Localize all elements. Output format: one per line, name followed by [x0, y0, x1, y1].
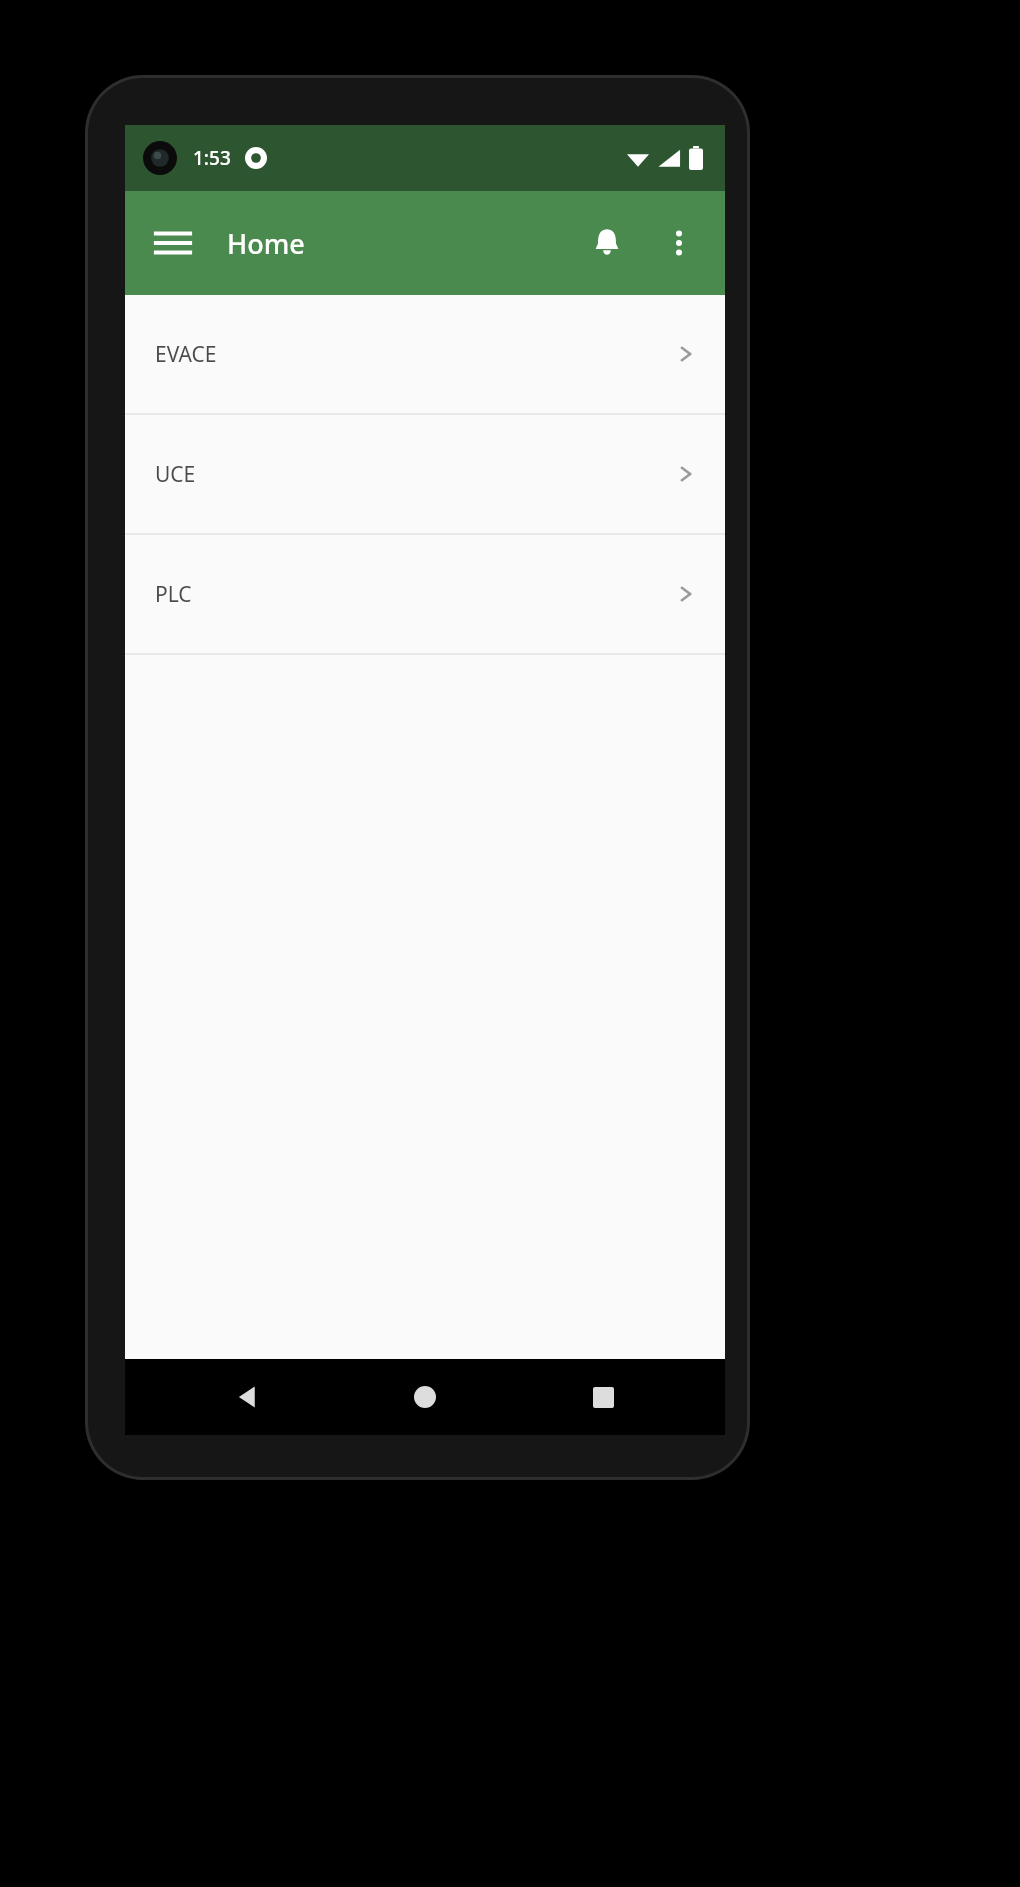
staticText: EVACE [155, 340, 217, 369]
button[interactable]: Notifications [571, 207, 643, 279]
staticText: 1:53 [193, 145, 231, 171]
button[interactable]: Back [193, 1359, 303, 1435]
staticText: UCE [155, 460, 196, 489]
button[interactable]: More options [643, 207, 715, 279]
button[interactable]: PLC [125, 535, 725, 653]
staticText: PLC [155, 580, 192, 609]
button[interactable]: Open navigation menu [137, 207, 209, 279]
button[interactable]: EVACE [125, 295, 725, 413]
button[interactable]: Recent apps [548, 1359, 658, 1435]
button[interactable]: UCE [125, 415, 725, 533]
staticText: Home [227, 225, 305, 262]
button[interactable]: Home [370, 1359, 480, 1435]
